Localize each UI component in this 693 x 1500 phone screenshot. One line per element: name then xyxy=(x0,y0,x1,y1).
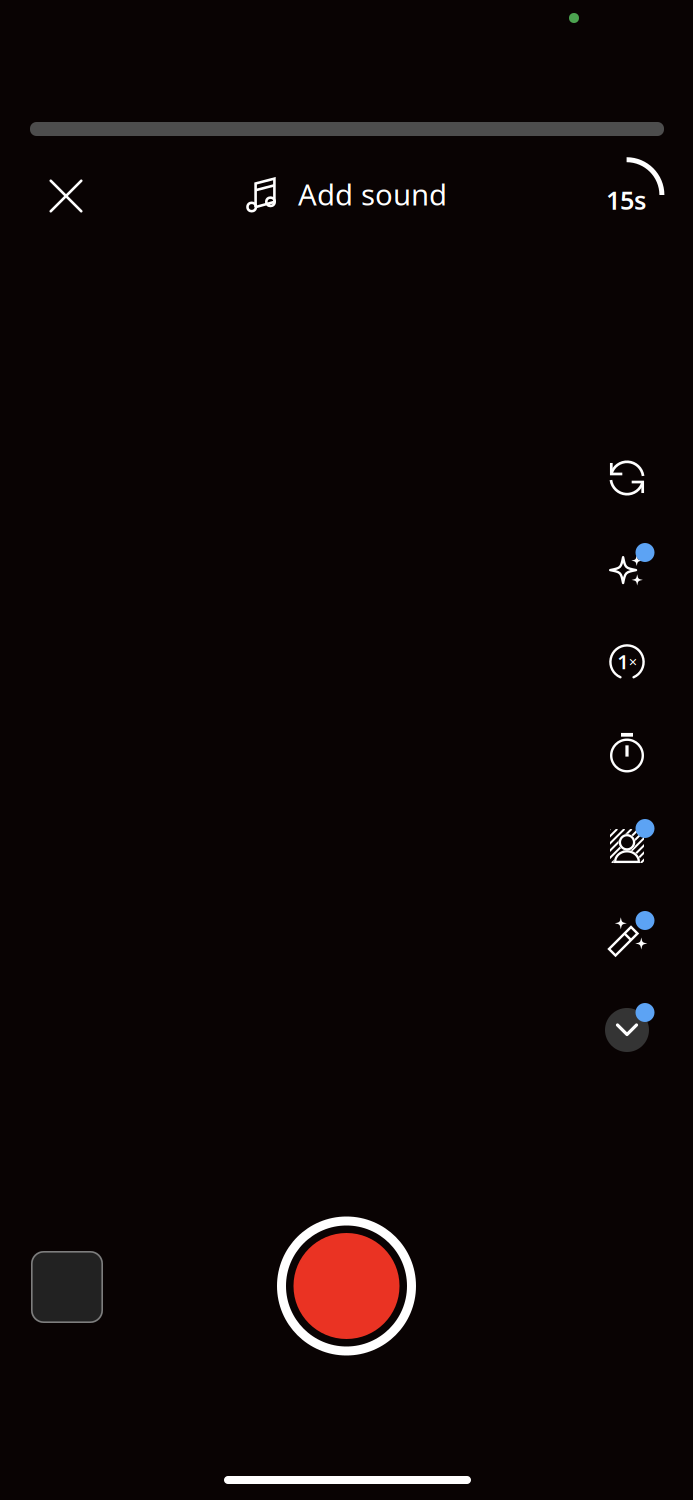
staticText: 1 xyxy=(617,648,628,675)
button[interactable]: More options xyxy=(600,1003,654,1057)
button[interactable]: Effects xyxy=(600,543,654,597)
button[interactable]: Timer xyxy=(600,727,654,781)
button[interactable]: Close xyxy=(36,166,96,226)
button[interactable]: Enhance xyxy=(600,911,654,965)
button[interactable]: Flip camera xyxy=(600,451,654,505)
button[interactable]: Add sound xyxy=(245,166,447,222)
staticText: Add sound xyxy=(298,174,447,213)
button[interactable]: Recording length 15 seconds xyxy=(606,145,668,207)
button[interactable]: Portrait xyxy=(600,819,654,873)
button[interactable]: Speed xyxy=(600,635,654,689)
staticText: × xyxy=(629,652,637,671)
staticText: 15s xyxy=(606,183,646,217)
button[interactable]: Record xyxy=(271,1211,421,1361)
button[interactable]: Gallery xyxy=(31,1251,103,1323)
